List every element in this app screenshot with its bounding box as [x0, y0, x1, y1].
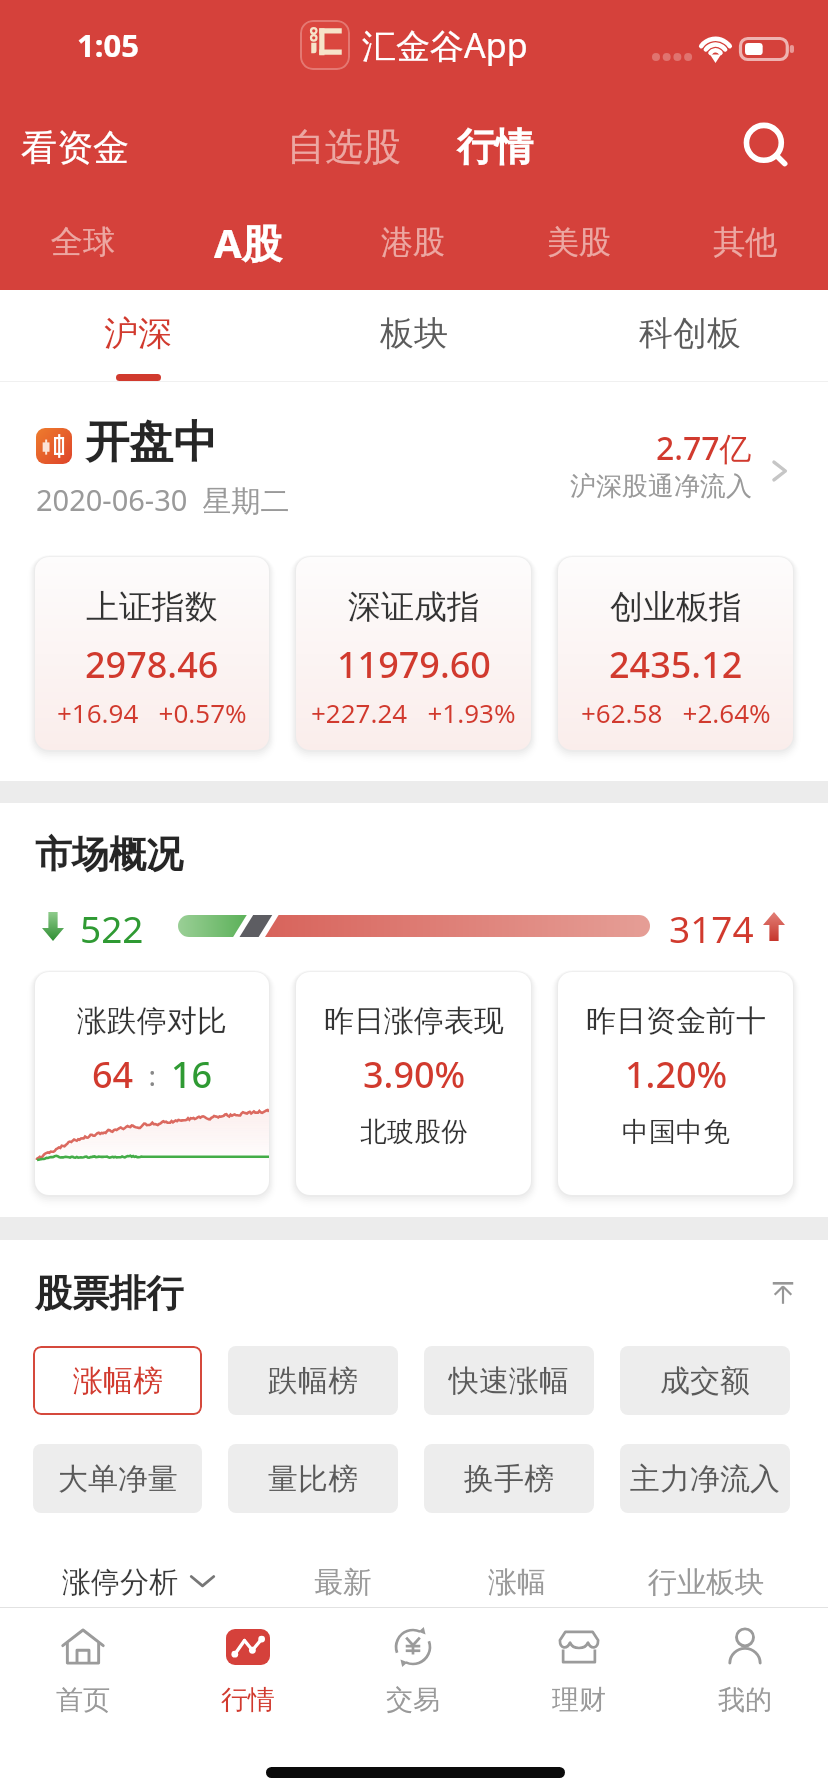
staticText: 2978.46	[85, 640, 219, 689]
button[interactable]: 沪深	[0, 290, 276, 382]
button[interactable]: 涨跌停对比	[35, 972, 269, 1195]
button[interactable]: 开盘中	[0, 382, 828, 557]
staticText: 换手榜	[464, 1460, 554, 1498]
staticText: 其他	[713, 222, 777, 262]
button[interactable]: 最新	[296, 1558, 390, 1604]
staticText: 行情	[457, 123, 533, 171]
staticText: 3174	[669, 903, 754, 949]
staticText: 沪深股通净流入	[570, 470, 752, 503]
staticText: 2020-06-30 星期二	[36, 480, 290, 520]
staticText: +16.94 +0.57%	[57, 695, 247, 730]
staticText: 自选股	[287, 123, 401, 171]
button[interactable]: 昨日涨停表现	[296, 972, 531, 1195]
button[interactable]: 涨幅	[470, 1558, 564, 1604]
staticText: 看资金	[21, 125, 129, 170]
staticText: 最新	[314, 1564, 372, 1598]
staticText: 64	[92, 1050, 134, 1099]
staticText: 板块	[380, 312, 448, 355]
staticText: 522	[80, 903, 144, 949]
staticText: 北玻股份	[360, 1115, 468, 1149]
button[interactable]: 港股	[330, 196, 496, 288]
staticText: 16	[171, 1050, 213, 1099]
button[interactable]: 首页	[0, 1608, 165, 1732]
button[interactable]: 我的	[662, 1608, 828, 1732]
button[interactable]: Search	[734, 114, 800, 180]
staticText: 创业板指	[610, 586, 742, 628]
staticText: 主力净流入	[630, 1460, 780, 1498]
button[interactable]: 板块	[276, 290, 552, 382]
staticText: 2.77亿	[656, 426, 752, 470]
staticText: 科创板	[639, 312, 741, 355]
staticText: 全球	[51, 222, 115, 262]
button[interactable]: 成交额	[620, 1346, 790, 1415]
staticText: 1.20%	[625, 1050, 728, 1099]
button[interactable]: 跌幅榜	[228, 1346, 398, 1415]
staticText: 港股	[381, 222, 445, 262]
staticText: :	[134, 1056, 171, 1094]
button[interactable]: 理财	[496, 1608, 662, 1732]
staticText: 我的	[718, 1683, 772, 1717]
button[interactable]: 自选股	[271, 111, 417, 183]
button[interactable]: 快速涨幅	[424, 1346, 594, 1415]
button[interactable]: 涨停分析	[44, 1558, 233, 1604]
staticText: 涨跌停对比	[77, 1002, 227, 1040]
staticText: 交易	[386, 1683, 440, 1717]
staticText: 市场概况	[35, 831, 183, 878]
staticText: 3.90%	[363, 1050, 466, 1099]
staticText: 1:05	[77, 24, 139, 66]
staticText: +62.58 +2.64%	[581, 695, 771, 730]
staticText: 汇金谷App	[362, 22, 528, 68]
staticText: 上证指数	[86, 586, 218, 628]
button[interactable]: 大单净量	[33, 1444, 202, 1513]
staticText: 理财	[552, 1683, 606, 1717]
staticText: 大单净量	[58, 1460, 178, 1498]
button[interactable]: 美股	[496, 196, 662, 288]
button[interactable]: 看资金	[5, 113, 145, 182]
staticText: A股	[214, 215, 282, 270]
staticText: 首页	[56, 1683, 110, 1717]
staticText: 跌幅榜	[268, 1362, 358, 1400]
button[interactable]: 量比榜	[228, 1444, 398, 1513]
button[interactable]: 科创板	[552, 290, 828, 382]
staticText: 美股	[547, 222, 611, 262]
staticText: 2435.12	[609, 640, 743, 689]
button[interactable]: 上证指数	[35, 557, 269, 750]
button[interactable]: 交易	[330, 1608, 496, 1732]
staticText: 涨停分析	[62, 1564, 178, 1598]
button[interactable]: 行情	[165, 1608, 330, 1732]
staticText: 量比榜	[268, 1460, 358, 1498]
staticText: 成交额	[660, 1362, 750, 1400]
button[interactable]: 行业板块	[630, 1558, 782, 1604]
staticText: 中国中免	[622, 1115, 730, 1149]
button[interactable]: 深证成指	[296, 557, 531, 750]
staticText: 昨日涨停表现	[324, 1002, 504, 1040]
button[interactable]: 行情	[441, 111, 549, 183]
staticText: 涨幅	[488, 1564, 546, 1598]
button[interactable]: 涨幅榜	[33, 1346, 202, 1415]
staticText: +227.24 +1.93%	[311, 695, 516, 730]
staticText: 开盘中	[85, 415, 217, 470]
button[interactable]: 昨日资金前十	[558, 972, 793, 1195]
button[interactable]: 主力净流入	[620, 1444, 790, 1513]
staticText: 昨日资金前十	[586, 1002, 766, 1040]
button[interactable]: Collapse section	[758, 1266, 808, 1316]
staticText: 股票排行	[35, 1270, 183, 1317]
staticText: 行业板块	[648, 1564, 764, 1598]
staticText: 涨幅榜	[73, 1362, 163, 1400]
staticText: 行情	[221, 1683, 275, 1717]
button[interactable]: 其他	[662, 196, 828, 288]
button[interactable]: 创业板指	[558, 557, 793, 750]
staticText: 快速涨幅	[449, 1362, 569, 1400]
staticText: 11979.60	[337, 640, 491, 689]
button[interactable]: 换手榜	[424, 1444, 594, 1513]
staticText: 深证成指	[348, 586, 480, 628]
staticText: 沪深	[104, 312, 172, 355]
button[interactable]: A股	[165, 196, 330, 288]
button[interactable]: 全球	[0, 196, 165, 288]
